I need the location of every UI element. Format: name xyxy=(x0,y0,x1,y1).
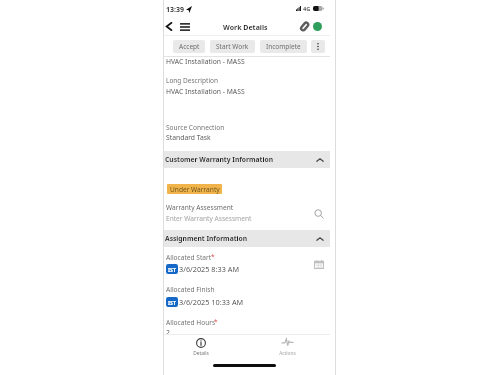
staticText: Allocated Finish xyxy=(166,285,215,294)
staticText: Enter Warranty Assessment xyxy=(166,214,252,223)
staticText: IST xyxy=(168,299,176,306)
button[interactable]: Incomplete xyxy=(260,40,307,53)
staticText: Source Connection xyxy=(166,123,225,132)
button[interactable]: Attach file xyxy=(298,20,310,32)
staticText: HVAC Installation - MASS xyxy=(166,57,245,66)
button[interactable]: Actions xyxy=(267,334,307,360)
staticText: 2 xyxy=(166,328,170,337)
staticText: Actions xyxy=(279,350,296,357)
staticText: Long Description xyxy=(166,76,219,85)
button[interactable]: More options xyxy=(311,40,325,53)
staticText: Standard Task xyxy=(166,133,211,142)
staticText: 3/6/2025 10:33 AM xyxy=(179,297,244,307)
staticText: 4G xyxy=(303,5,311,13)
button[interactable]: Pick date xyxy=(313,258,325,270)
button[interactable]: Start Work xyxy=(210,40,255,53)
staticText: 13:39 xyxy=(166,5,184,15)
staticText: Work Details xyxy=(223,23,268,33)
staticText: Accept xyxy=(179,42,200,51)
button[interactable]: Search xyxy=(313,208,326,221)
staticText: Start Work xyxy=(216,42,249,51)
button[interactable]: Menu xyxy=(178,20,191,33)
staticText: 3/6/2025 8:33 AM xyxy=(179,264,240,274)
staticText: IST xyxy=(168,266,176,273)
staticText: * xyxy=(211,252,215,261)
staticText: Under Warranty xyxy=(170,185,220,194)
staticText: Customer Warranty Information xyxy=(165,155,273,164)
button[interactable]: Accept xyxy=(173,40,205,53)
staticText: Assignment Information xyxy=(165,234,248,243)
button[interactable]: Back xyxy=(162,20,175,33)
staticText: * xyxy=(214,317,218,326)
button[interactable]: Collapse section xyxy=(314,233,326,245)
staticText: Incomplete xyxy=(266,42,301,51)
button[interactable]: Status indicator xyxy=(311,20,323,32)
button[interactable]: Details xyxy=(181,334,221,360)
button[interactable]: Collapse section xyxy=(314,154,326,166)
staticText: HVAC Installation - MASS xyxy=(166,87,245,96)
staticText: Allocated Hours xyxy=(166,318,216,327)
staticText: Warranty Assessment xyxy=(166,203,234,212)
staticText: Allocated Start xyxy=(166,253,212,262)
staticText: Details xyxy=(193,350,209,357)
